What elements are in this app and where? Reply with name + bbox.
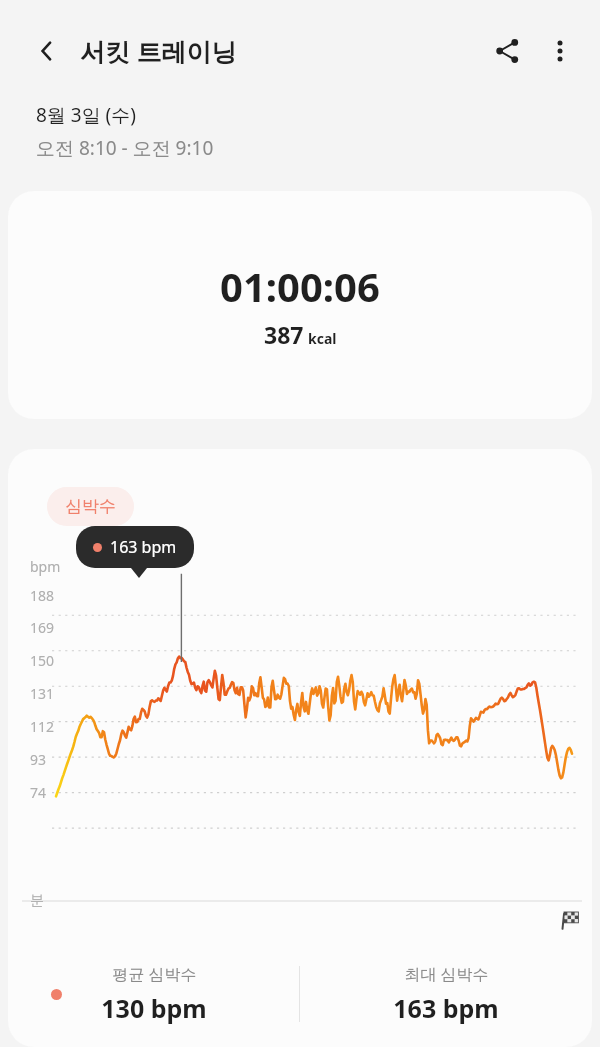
button[interactable]: Back — [23, 27, 71, 75]
staticText: kcal — [308, 329, 337, 348]
button[interactable]: 01:00:06 — [8, 191, 592, 419]
staticText: 74 — [30, 783, 47, 802]
staticText: 8월 3일 (수) — [36, 102, 137, 128]
staticText: 서킷 트레이닝 — [80, 34, 237, 68]
staticText: 93 — [30, 750, 47, 769]
button[interactable]: 최대 심박수 — [300, 963, 592, 1025]
staticText: bpm — [30, 557, 61, 576]
staticText: 112 — [30, 717, 55, 736]
staticText: 150 — [30, 651, 55, 670]
staticText: 131 — [30, 684, 55, 703]
staticText: 최대 심박수 — [404, 963, 489, 985]
button[interactable]: Share — [482, 25, 534, 77]
staticText: 169 — [30, 618, 55, 637]
button[interactable]: More options — [534, 25, 586, 77]
staticText: 387 — [264, 319, 304, 350]
button[interactable]: 심박수 — [47, 487, 134, 526]
staticText: 163 bpm — [393, 991, 499, 1025]
staticText: 오전 8:10 - 오전 9:10 — [36, 135, 214, 161]
button[interactable]: 163 bpm — [76, 526, 194, 568]
staticText: 163 bpm — [110, 536, 177, 558]
staticText: 심박수 — [65, 496, 116, 517]
staticText: 130 bpm — [101, 991, 207, 1025]
button[interactable]: 평균 심박수 — [8, 963, 299, 1025]
staticText: 평균 심박수 — [112, 963, 197, 985]
staticText: 188 — [30, 586, 55, 605]
staticText: 분 — [30, 892, 44, 910]
staticText: 01:00:06 — [220, 259, 380, 313]
